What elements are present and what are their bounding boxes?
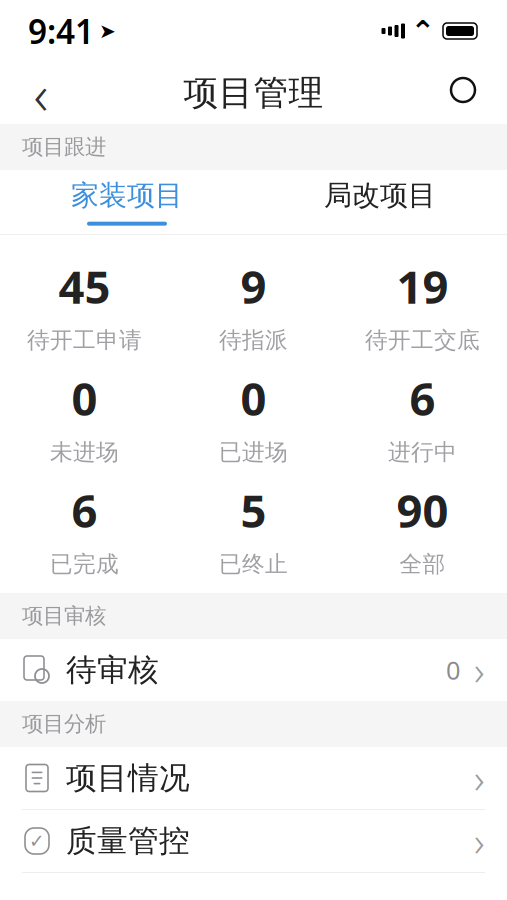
- staticText: 9: [240, 256, 266, 316]
- button[interactable]: ✓: [0, 810, 507, 872]
- staticText: 已终止: [219, 550, 288, 578]
- staticText: 项目分析: [22, 711, 106, 737]
- staticText: 待指派: [219, 326, 288, 354]
- staticText: 已完成: [50, 550, 119, 578]
- staticText: 已进场: [219, 438, 288, 466]
- staticText: 局改项目: [324, 178, 436, 213]
- staticText: 6: [71, 480, 97, 540]
- staticText: 0: [71, 368, 97, 428]
- button[interactable]: Back: [12, 64, 70, 122]
- staticText: 项目跟进: [22, 134, 106, 160]
- staticText: 项目审核: [22, 603, 106, 629]
- staticText: ‹: [33, 56, 48, 130]
- staticText: 项目管理: [183, 72, 323, 114]
- button[interactable]: 9: [169, 249, 338, 361]
- staticText: 质量管控: [66, 822, 190, 860]
- staticText: ✓: [29, 830, 45, 852]
- staticText: 0: [240, 368, 266, 428]
- button[interactable]: 局改项目: [253, 170, 506, 234]
- button[interactable]: 45: [0, 249, 169, 361]
- staticText: ›: [474, 814, 485, 867]
- staticText: 6: [409, 368, 435, 428]
- staticText: ›: [474, 643, 485, 696]
- staticText: 项目情况: [66, 759, 190, 797]
- staticText: 待审核: [66, 651, 159, 689]
- staticText: 45: [58, 256, 110, 316]
- staticText: 未进场: [50, 438, 119, 466]
- staticText: ➤: [99, 20, 116, 42]
- staticText: 19: [396, 256, 448, 316]
- button[interactable]: 0: [169, 361, 338, 473]
- button[interactable]: 6: [0, 473, 169, 585]
- button[interactable]: 项目情况: [0, 747, 507, 809]
- staticText: ⌃: [410, 14, 435, 48]
- button[interactable]: 90: [338, 473, 507, 585]
- button[interactable]: 19: [338, 249, 507, 361]
- staticText: 9:41: [28, 9, 94, 53]
- staticText: 5: [240, 480, 266, 540]
- button[interactable]: 5: [169, 473, 338, 585]
- button[interactable]: 待审核: [0, 639, 507, 701]
- button[interactable]: Search: [437, 64, 495, 122]
- staticText: 进行中: [388, 438, 457, 466]
- staticText: 90: [396, 480, 448, 540]
- button[interactable]: 0: [0, 361, 169, 473]
- staticText: ›: [474, 751, 485, 804]
- staticText: 待开工交底: [365, 326, 480, 354]
- staticText: 全部: [399, 550, 445, 578]
- staticText: 待开工申请: [27, 326, 142, 354]
- staticText: 家装项目: [71, 178, 183, 213]
- button[interactable]: 6: [338, 361, 507, 473]
- staticText: 0: [446, 653, 460, 687]
- button[interactable]: 家装项目: [0, 170, 253, 234]
